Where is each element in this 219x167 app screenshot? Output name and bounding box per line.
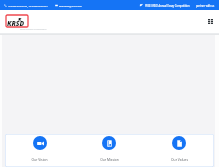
- staticText: +2348033333333, +2348022222222: [8, 4, 48, 7]
- button[interactable]: Our Values: [144, 134, 214, 167]
- staticText: Royal School of Dominion: [20, 28, 47, 31]
- staticText: Our Values: [171, 157, 188, 161]
- staticText: enquiries@krsd.com: [59, 4, 82, 7]
- staticText: FREE KRSD Annual Essay Competition: [145, 4, 190, 7]
- button[interactable]: enquiries@krsd.com: [55, 4, 82, 7]
- button[interactable]: Menu: [206, 17, 215, 26]
- staticText: Our Mission: [100, 157, 119, 161]
- button[interactable]: KRSD home: [5, 14, 42, 32]
- staticText: KRSD: [7, 19, 24, 28]
- button[interactable]: Our Mission: [74, 134, 144, 167]
- staticText: Our Vision: [31, 157, 48, 161]
- button[interactable]: FREE KRSD Annual Essay Competition: [139, 3, 190, 7]
- button[interactable]: Our Vision: [5, 134, 74, 167]
- button[interactable]: partner with us: [196, 4, 215, 7]
- button[interactable]: +2348033333333, +2348022222222: [4, 4, 48, 7]
